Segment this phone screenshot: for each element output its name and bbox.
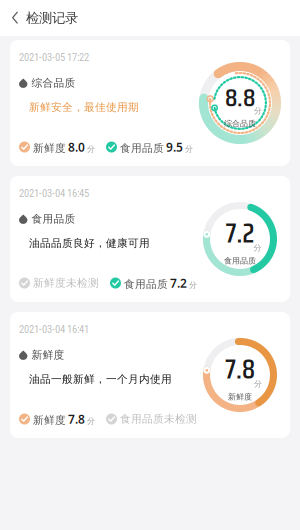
staticText: 8.0: [68, 139, 85, 155]
button[interactable]: 8.8: [10, 40, 290, 166]
staticText: 7.2: [170, 275, 187, 291]
staticText: 7.8: [225, 348, 255, 390]
staticText: 新鲜度: [31, 348, 64, 362]
staticText: 分: [253, 243, 261, 253]
button[interactable]: 7.8: [10, 312, 290, 438]
staticText: 新鲜安全，最佳使用期: [29, 101, 139, 114]
staticText: 新鲜度: [228, 392, 252, 402]
staticText: 食用品质: [120, 142, 164, 155]
staticText: 新鲜度未检测: [33, 276, 99, 290]
staticText: 分: [254, 379, 262, 389]
staticText: 2021-03-04 16:41: [19, 323, 89, 335]
staticText: 9.5: [166, 139, 183, 155]
staticText: 新鲜度: [33, 414, 66, 427]
staticText: 分: [185, 144, 193, 154]
staticText: 油品品质良好，健康可用: [29, 237, 150, 250]
staticText: 2021-03-04 16:45: [19, 187, 89, 199]
staticText: 油品一般新鲜，一个月内使用: [29, 373, 172, 386]
staticText: 7.2: [225, 212, 254, 254]
staticText: 2021-03-05 17:22: [19, 51, 89, 63]
staticText: 新鲜度: [33, 142, 66, 155]
staticText: 综合品质: [224, 119, 256, 129]
staticText: 检测记录: [26, 10, 78, 26]
staticText: 分: [254, 106, 262, 116]
staticText: 食用品质未检测: [120, 412, 197, 426]
staticText: 8.8: [225, 77, 255, 117]
staticText: 分: [87, 416, 95, 426]
staticText: 分: [189, 280, 197, 290]
staticText: 食用品质: [224, 256, 256, 266]
button[interactable]: 7.2: [10, 176, 290, 302]
staticText: 综合品质: [31, 76, 75, 90]
staticText: 食用品质: [31, 212, 75, 226]
staticText: 分: [87, 144, 95, 154]
staticText: 食用品质: [124, 278, 168, 291]
staticText: 7.8: [68, 411, 85, 427]
button[interactable]: 检测记录: [0, 0, 90, 36]
